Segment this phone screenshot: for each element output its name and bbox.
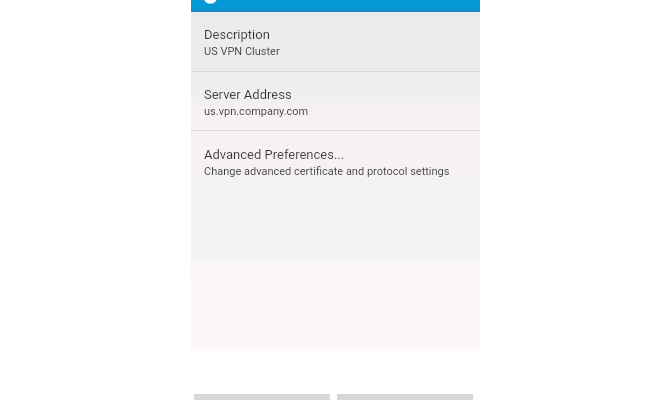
button[interactable]: Navigate up xyxy=(191,0,480,12)
staticText: us.vpn.company.com xyxy=(204,105,309,118)
staticText: Description xyxy=(204,27,270,42)
staticText: Server Address xyxy=(204,87,292,102)
button[interactable]: Advanced Preferences... xyxy=(191,131,480,190)
button[interactable]: Description xyxy=(191,12,480,71)
button[interactable]: Server Address xyxy=(191,72,480,130)
staticText: US VPN Cluster xyxy=(204,45,280,58)
staticText: Advanced Preferences... xyxy=(204,147,345,162)
staticText: Change advanced certificate and protocol… xyxy=(204,165,450,178)
